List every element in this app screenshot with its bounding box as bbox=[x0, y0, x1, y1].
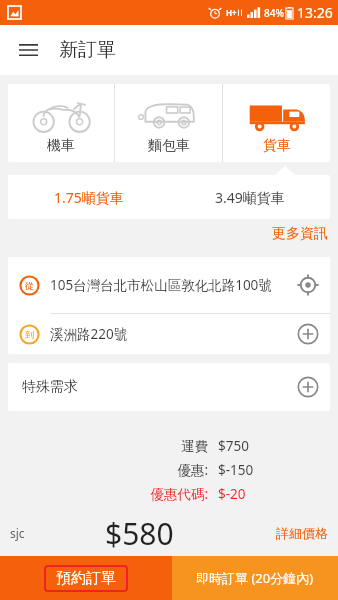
staticText: 麵包車 bbox=[148, 137, 190, 155]
staticText: $580 bbox=[105, 513, 174, 554]
staticText: 1.75噸貨車 bbox=[54, 188, 124, 207]
staticText: 預約訂單 bbox=[56, 569, 116, 588]
staticText: 84% bbox=[264, 6, 284, 20]
button[interactable]: 預約訂單 bbox=[0, 556, 172, 600]
staticText: 詳細價格 bbox=[276, 525, 328, 541]
button[interactable]: 貨車 bbox=[223, 84, 330, 162]
button[interactable]: 特殊需求 bbox=[8, 363, 330, 411]
button[interactable]: 從 bbox=[8, 257, 330, 313]
staticText: 即時訂單 (20分鐘內) bbox=[196, 569, 314, 587]
button[interactable]: Add stop bbox=[286, 314, 330, 354]
button[interactable]: 更多資訊 bbox=[262, 219, 338, 249]
staticText: 運費 bbox=[181, 438, 208, 455]
staticText: 13:26 bbox=[297, 3, 333, 22]
staticText: $-150 bbox=[218, 461, 254, 479]
staticText: 新訂單 bbox=[59, 38, 116, 62]
button[interactable]: 即時訂單 (20分鐘內) bbox=[172, 556, 338, 600]
staticText: 優惠: bbox=[177, 461, 208, 479]
button[interactable]: 麵包車 bbox=[115, 84, 222, 162]
staticText: $-20 bbox=[218, 485, 246, 503]
staticText: 優惠代碼: bbox=[150, 485, 208, 503]
staticText: 溪洲路220號 bbox=[50, 325, 286, 343]
staticText: 從 bbox=[25, 280, 34, 291]
other: Add special requirement bbox=[286, 365, 330, 409]
button[interactable]: 1.75噸貨車 bbox=[8, 175, 169, 219]
staticText: 105台灣台北市松山區敦化北路100號 bbox=[50, 276, 286, 294]
button[interactable]: 3.49噸貨車 bbox=[169, 175, 330, 219]
button[interactable]: 詳細價格 bbox=[266, 517, 338, 549]
button[interactable]: 機車 bbox=[8, 84, 114, 162]
staticText: 貨車 bbox=[263, 137, 291, 155]
staticText: 特殊需求 bbox=[22, 378, 78, 396]
button[interactable]: Use current location bbox=[286, 263, 330, 307]
button[interactable]: Open navigation menu bbox=[8, 30, 48, 70]
staticText: 機車 bbox=[47, 137, 75, 155]
staticText: $750 bbox=[218, 437, 249, 455]
staticText: 到 bbox=[25, 329, 34, 340]
staticText: 更多資訊 bbox=[272, 225, 328, 243]
button[interactable]: 到 bbox=[8, 314, 330, 354]
staticText: 3.49噸貨車 bbox=[215, 188, 285, 207]
staticText: sjc bbox=[10, 525, 25, 541]
staticText: H+ bbox=[226, 7, 237, 18]
